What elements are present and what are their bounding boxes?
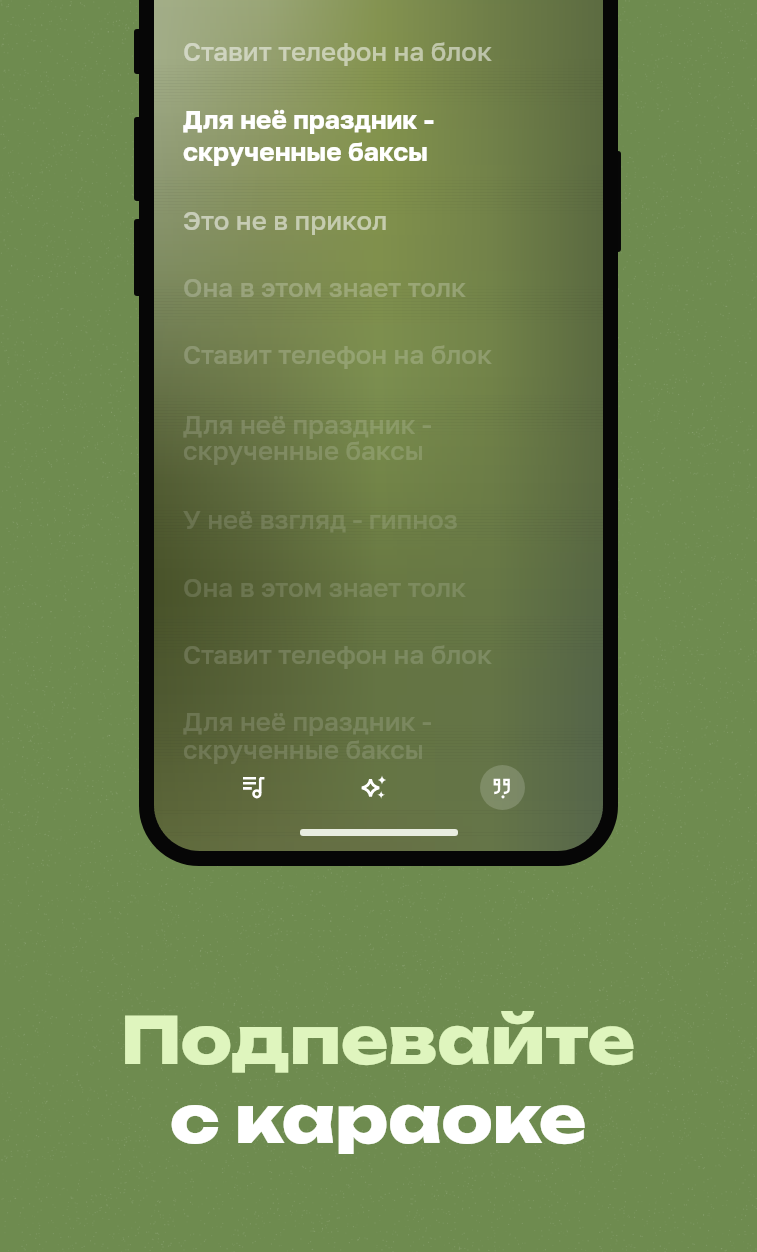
staticText: с караоке [170,1079,587,1158]
staticText: Ставит телефон на блок [183,639,493,670]
staticText: Для неё праздник - [183,104,434,135]
staticText: Она в этом знает толк [183,572,467,603]
button[interactable]: Karaoke mode [480,765,525,810]
button[interactable]: Lyrics [228,762,278,812]
staticText: Ставит телефон на блок [183,36,493,67]
staticText: скрученные баксы [183,734,425,765]
staticText: У неё взгляд - гипноз [183,504,458,535]
staticText: Ставит телефон на блок [183,339,493,370]
staticText: скрученные баксы [183,435,425,466]
staticText: скрученные баксы [183,136,429,167]
button[interactable]: Effects [350,762,400,812]
staticText: Она в этом знает толк [183,272,467,303]
staticText: Это не в прикол [183,205,388,236]
staticText: Для неё праздник - [183,706,432,737]
staticText: Для неё праздник - [183,409,432,440]
staticText: Подпевайте [121,1000,636,1079]
